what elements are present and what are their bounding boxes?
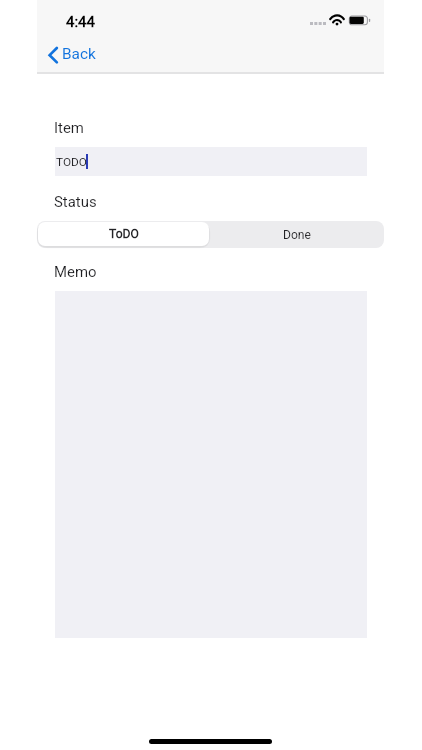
- staticText: Memo: [54, 263, 97, 280]
- button[interactable]: Back: [44, 41, 100, 69]
- staticText: Done: [283, 228, 311, 242]
- button[interactable]: ToDO: [38, 222, 209, 246]
- staticText: 4:44: [66, 13, 95, 31]
- staticText: Item: [54, 119, 84, 136]
- staticText: ToDO: [109, 227, 139, 241]
- staticText: Back: [62, 45, 96, 63]
- button[interactable]: Done: [210, 221, 384, 248]
- staticText: TODO: [56, 155, 87, 169]
- staticText: Status: [54, 193, 97, 210]
- button[interactable]: TODO: [55, 147, 367, 176]
